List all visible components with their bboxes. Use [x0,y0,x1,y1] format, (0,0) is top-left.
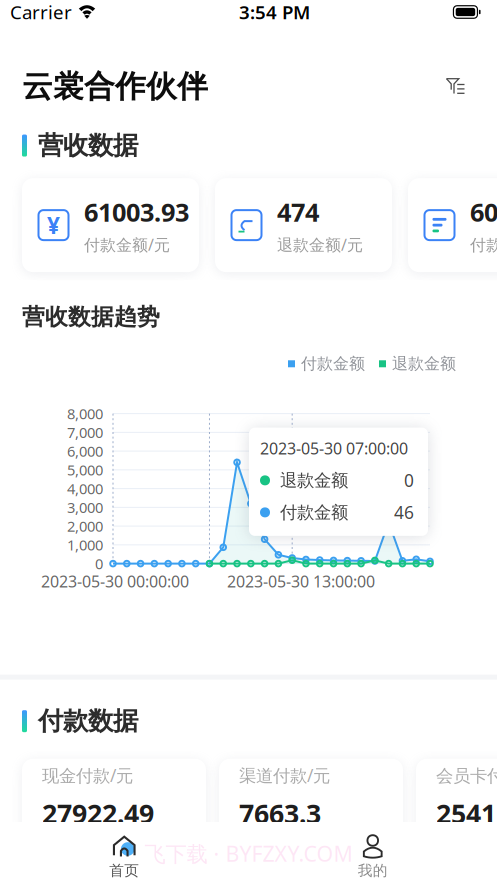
button[interactable]: 首页 [0,834,248,879]
staticText: 2023-05-30 13:00:00 [227,571,375,592]
staticText: 6,000 [67,441,103,461]
staticText: 5,000 [67,460,103,480]
staticText: 2023-05-30 00:00:00 [41,571,189,592]
staticText: 云裳合作伙伴 [22,68,208,105]
staticText: 2023-05-30 07:00:00 [260,438,408,459]
staticText: 8,000 [67,404,103,423]
staticText: 付款金额 [301,354,365,374]
staticText: 营收数据趋势 [22,303,160,331]
staticText: 退款金额 [392,354,456,374]
staticText: 3:54 PM [239,0,310,24]
staticText: 付款金额/元 [84,234,170,255]
staticText: 1,000 [67,535,103,555]
staticText: 付款金额 [280,502,348,523]
staticText: 渠道付款/元 [239,764,330,787]
staticText: 4,000 [67,479,103,498]
staticText: 付款数据 [38,706,138,737]
staticText: 付款订单/笔 [470,234,497,255]
staticText: 现金付款/元 [42,764,133,787]
staticText: 0 [95,554,103,573]
staticText: 0 [404,469,414,492]
staticText: 2,000 [67,516,103,536]
staticText: ¥ [47,210,60,240]
button[interactable]: Filter [435,65,477,107]
staticText: 退款金额 [280,470,348,491]
staticText: Carrier [10,0,72,24]
staticText: 退款金额/元 [277,234,363,255]
staticText: 474 [277,195,319,229]
staticText: 首页 [109,861,139,879]
staticText: 7663.3 [239,796,321,831]
staticText: 605 [470,195,497,229]
staticText: 7,000 [67,423,103,442]
staticText: 3,000 [67,498,103,517]
button[interactable]: 我的 [248,834,497,879]
staticText: 27922.49 [42,796,154,831]
staticText: 2541 [436,796,496,831]
staticText: 61003.93 [84,195,189,229]
staticText: 营收数据 [38,130,138,161]
staticText: 飞下载 · BYFZXY.COM [144,839,352,868]
staticText: 会员卡付款/元 [436,764,497,787]
staticText: 我的 [358,861,388,879]
staticText: 46 [394,501,414,524]
